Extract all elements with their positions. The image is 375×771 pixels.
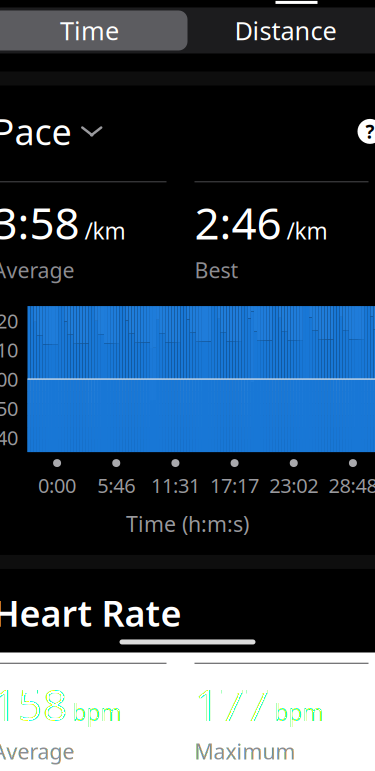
staticText: Time bbox=[60, 14, 119, 47]
staticText: 5:50 bbox=[0, 395, 18, 422]
staticText: Time (h:m:s) bbox=[126, 510, 249, 538]
staticText: 6:40 bbox=[0, 424, 18, 451]
staticText: 23:02 bbox=[269, 472, 318, 499]
staticText: 5:00 bbox=[0, 366, 18, 392]
staticText: 28:48 bbox=[328, 472, 375, 499]
staticText: ? bbox=[365, 119, 374, 144]
staticText: 17:17 bbox=[210, 472, 259, 499]
staticText: Heart Rate bbox=[0, 589, 181, 637]
staticText: Charts bbox=[261, 0, 332, 1]
staticText: Maximum bbox=[194, 737, 295, 765]
staticText: 4:10 bbox=[0, 337, 18, 363]
staticText: Average bbox=[0, 256, 74, 284]
button[interactable]: Time bbox=[0, 10, 187, 50]
staticText: 3:20 bbox=[0, 307, 18, 334]
staticText: 3:58 bbox=[0, 193, 79, 252]
staticText: 158 bbox=[0, 675, 67, 733]
staticText: bpm bbox=[274, 697, 323, 727]
button[interactable]: Pace bbox=[0, 101, 103, 161]
staticText: 177 bbox=[194, 675, 269, 733]
staticText: /km bbox=[286, 216, 327, 246]
staticText: 0:00 bbox=[38, 472, 76, 499]
staticText: 11:31 bbox=[151, 472, 200, 499]
staticText: bpm bbox=[72, 697, 121, 727]
staticText: Pace bbox=[0, 107, 71, 155]
staticText: Average bbox=[0, 737, 74, 765]
button[interactable]: Distance bbox=[187, 10, 375, 50]
staticText: Distance bbox=[234, 14, 336, 47]
staticText: 5:46 bbox=[97, 472, 135, 499]
staticText: 2:46 bbox=[194, 193, 281, 252]
button[interactable]: Help bbox=[357, 119, 375, 144]
staticText: /km bbox=[84, 216, 125, 246]
staticText: Best bbox=[194, 256, 238, 284]
